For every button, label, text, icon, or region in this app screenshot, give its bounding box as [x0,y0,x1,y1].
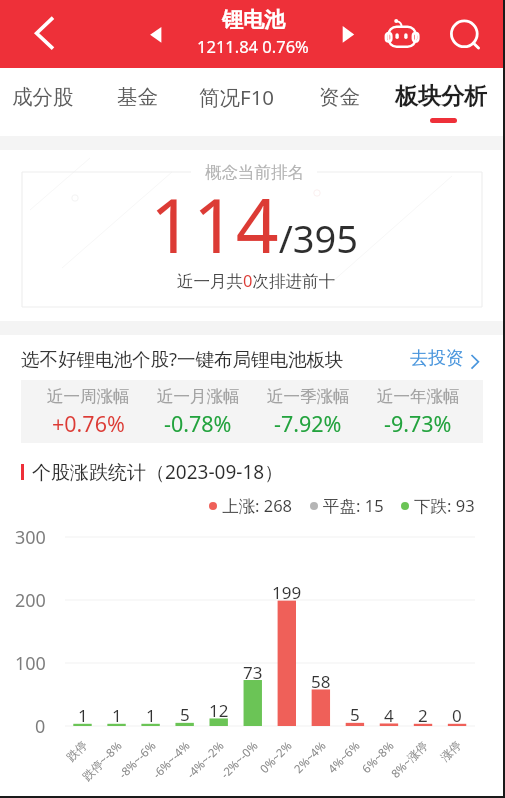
staticText: 1 [112,704,122,727]
staticText: 4 [384,704,394,727]
staticText: 12 [209,699,229,722]
staticText: 跌停~-8% [79,738,125,785]
staticText: 300 [15,525,46,550]
staticText: 1 [146,704,156,727]
button[interactable]: 成分股 [0,68,88,125]
button[interactable]: 资金 [294,68,384,125]
staticText: 选不好锂电池个股?一键布局锂电池板块 [21,346,344,371]
staticText: 平盘: 15 [323,494,384,517]
button[interactable]: 板块分析 [386,68,496,125]
staticText: -6%~-4% [149,738,193,782]
staticText: 4%~6% [324,738,363,777]
staticText: 上涨: 268 [222,494,293,517]
staticText: -4%~-2% [183,738,227,782]
staticText: 199 [272,581,302,604]
staticText: -2%~-0% [217,738,261,782]
staticText: -9.73% [384,409,452,438]
staticText: 近一年涨幅 [377,386,460,407]
staticText: 6%~8% [358,738,397,777]
button[interactable]: Next sector [332,20,364,50]
button[interactable]: Back [22,13,64,55]
button[interactable]: AI assistant [383,14,423,54]
staticText: 板块分析 [395,82,487,111]
button[interactable]: 简况F10 [192,68,282,125]
staticText: 100 [15,651,46,676]
staticText: 2 [418,704,428,727]
staticText: 涨停 [438,738,464,764]
staticText: 下跌: 93 [414,494,475,517]
button[interactable]: 基金 [92,68,182,125]
button[interactable]: Search [444,13,486,55]
staticText: -8%~-6% [115,738,159,782]
staticText: 基金 [117,84,158,110]
staticText: 5 [350,703,360,726]
staticText: 个股涨跌统计（2023-09-18） [32,459,284,485]
staticText: 0 [35,714,46,739]
staticText: 跌停 [64,738,90,764]
staticText: 58 [311,670,331,693]
staticText: 5 [180,703,190,726]
staticText: 0%~2% [256,738,295,777]
staticText: 概念当前排名 [205,162,304,183]
staticText: 近一月涨幅 [157,386,240,407]
staticText: 200 [15,588,46,613]
staticText: 0 [452,704,462,727]
staticText: 8%~涨停 [387,738,431,782]
button[interactable]: Previous sector [140,20,172,50]
staticText: 成分股 [12,84,74,110]
staticText: 114/395 [150,173,359,275]
staticText: 资金 [319,84,360,110]
staticText: 近一月共0次排进前十 [177,269,335,292]
staticText: 近一季涨幅 [267,386,350,407]
staticText: -0.78% [164,409,232,438]
staticText: 1211.84 0.76% [197,35,309,57]
staticText: 锂电池 [222,7,285,33]
staticText: +0.76% [52,409,125,438]
button[interactable]: 选不好锂电池个股?一键布局锂电池板块 [0,335,505,381]
staticText: 简况F10 [199,83,275,111]
staticText: 1 [78,704,88,727]
staticText: 去投资 [410,347,464,370]
staticText: 2%~4% [290,738,329,777]
staticText: 近一周涨幅 [47,386,130,407]
staticText: -7.92% [274,409,342,438]
staticText: 73 [243,661,263,684]
